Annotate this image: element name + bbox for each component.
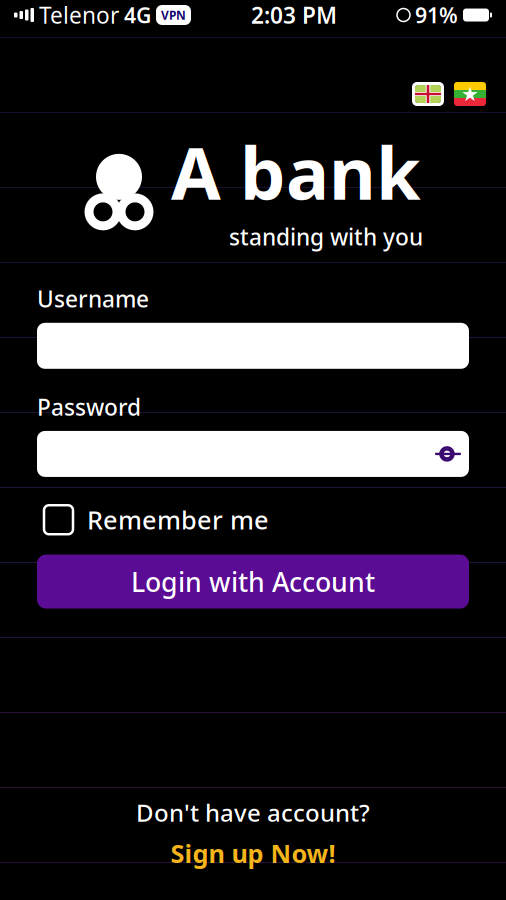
staticText: 2:03 PM [251,0,337,30]
button[interactable]: Myanmar language [454,82,486,106]
staticText: 4G [124,1,151,29]
button[interactable]: Remember me [44,503,269,536]
button[interactable]: Login with Account [37,555,469,609]
button[interactable]: Show password [425,431,469,477]
button[interactable]: Sign up Now! [170,836,335,870]
staticText: 91% [415,1,458,29]
staticText: Login with Account [131,564,375,599]
staticText: Telenor [39,0,119,30]
staticText: Remember me [87,503,269,536]
staticText: ★ [461,83,479,105]
staticText: VPN [161,7,186,23]
staticText: standing with you [229,222,423,252]
staticText: A bank [171,124,421,220]
staticText: Password [37,392,141,422]
button[interactable]: English language [412,82,444,106]
staticText: Don't have account? [136,796,370,828]
staticText: Username [37,284,149,314]
staticText: Sign up Now! [170,836,335,870]
